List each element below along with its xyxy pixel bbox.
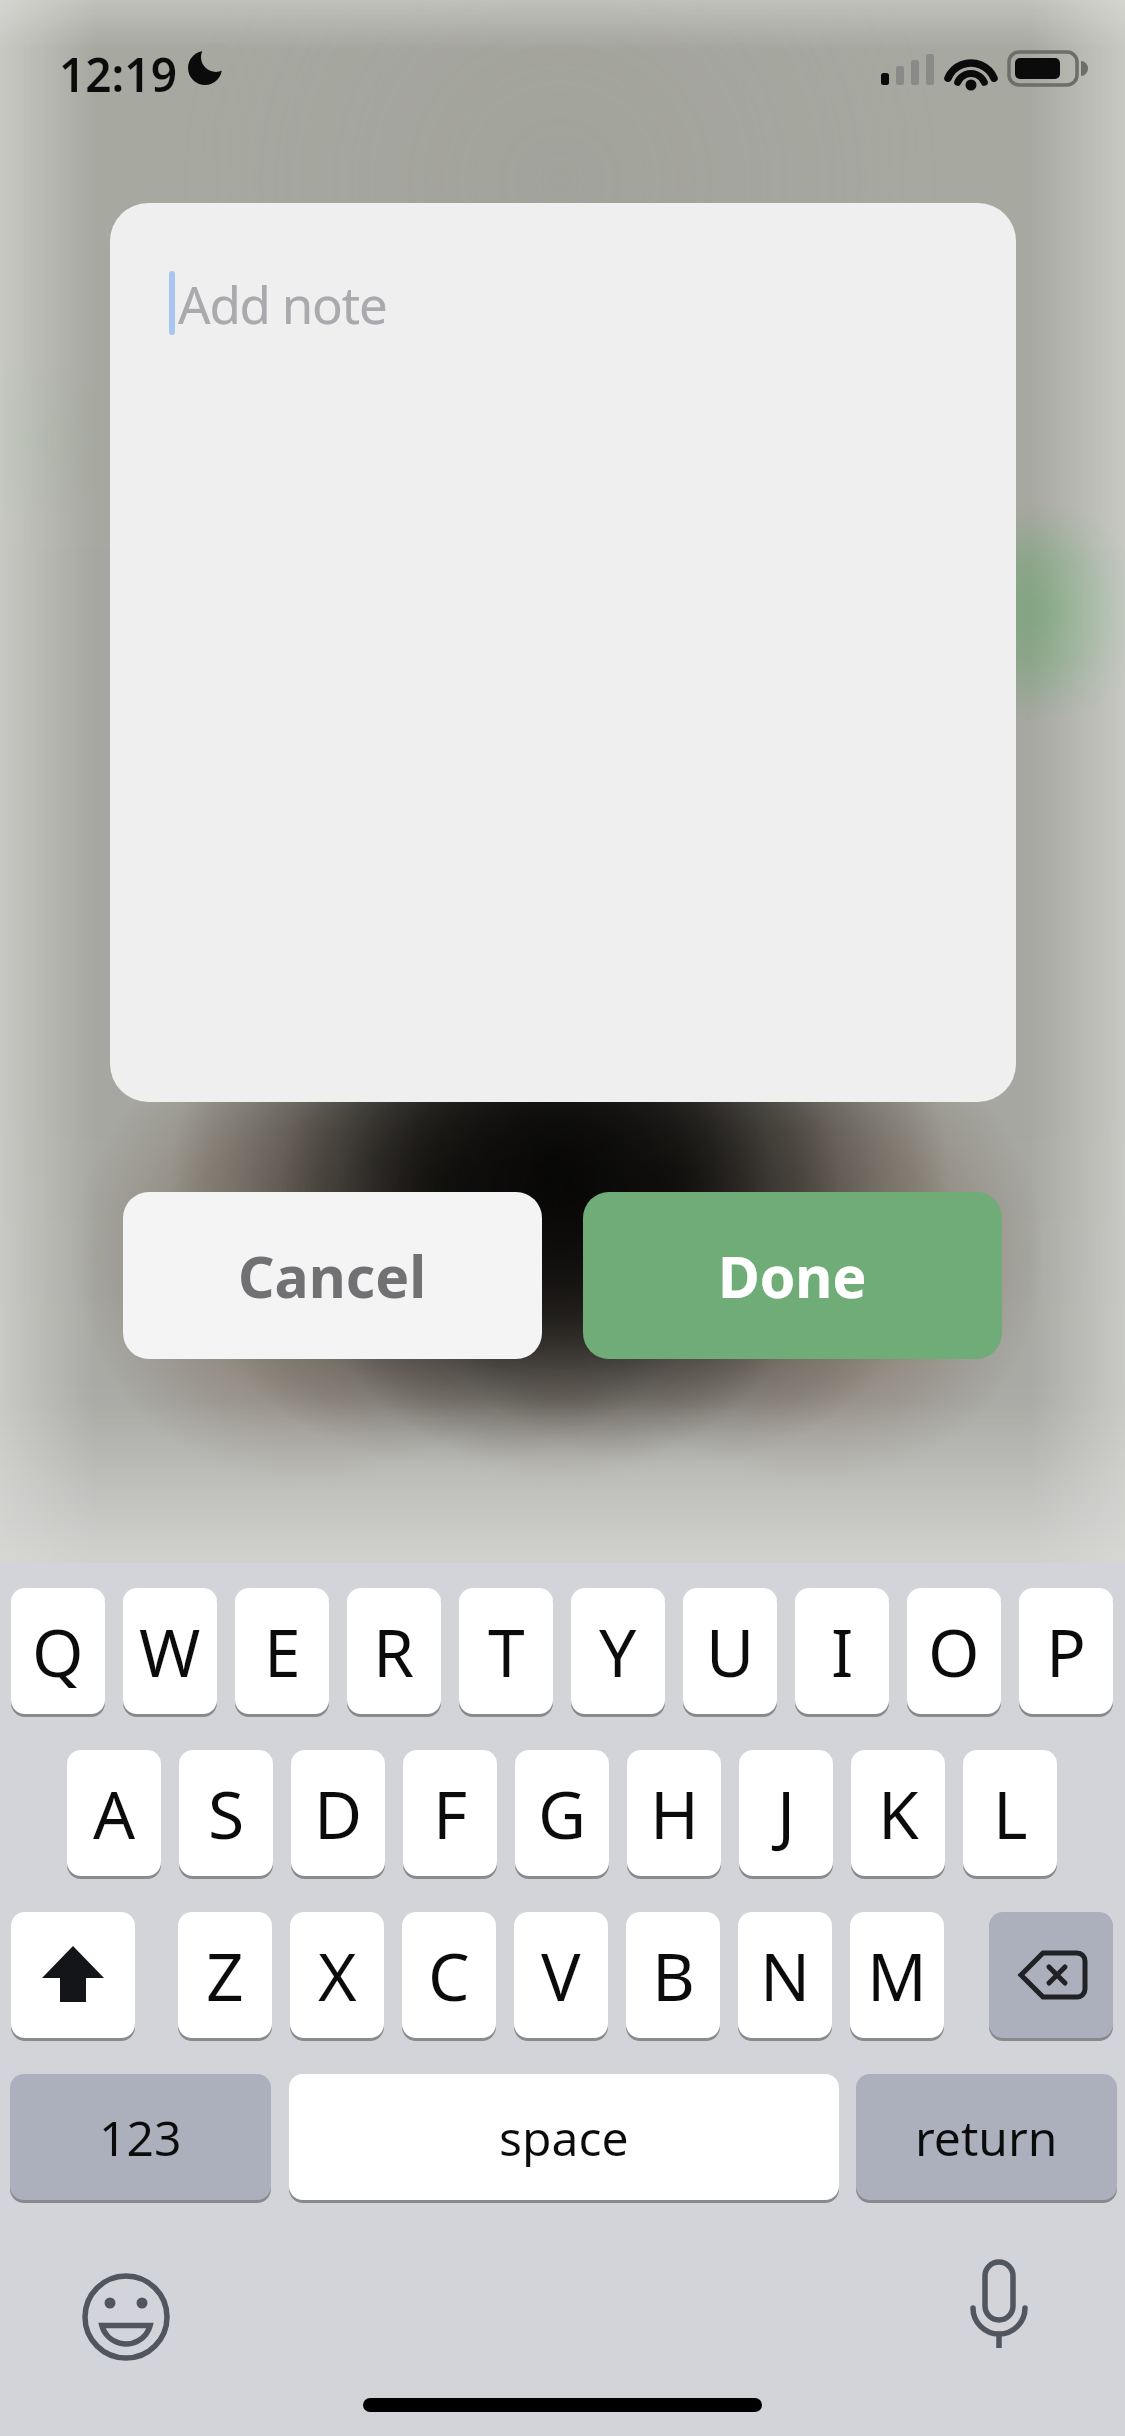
button[interactable]: O <box>907 1588 1001 1714</box>
staticText: B <box>652 1930 695 2020</box>
button[interactable]: I <box>795 1588 889 1714</box>
staticText: N <box>760 1930 811 2020</box>
staticText: M <box>867 1930 927 2020</box>
staticText: S <box>208 1768 245 1858</box>
button[interactable]: Q <box>11 1588 105 1714</box>
button[interactable]: K <box>851 1750 945 1876</box>
staticText: 12:19 <box>59 43 177 106</box>
button[interactable]: X <box>290 1912 384 2038</box>
button[interactable]: L <box>963 1750 1057 1876</box>
button[interactable]: space <box>289 2074 839 2200</box>
button[interactable]: Add note <box>110 203 1016 1102</box>
button[interactable]: Z <box>178 1912 272 2038</box>
staticText: T <box>488 1606 525 1696</box>
staticText: I <box>831 1606 854 1696</box>
button[interactable]: U <box>683 1588 777 1714</box>
staticText: 123 <box>99 2105 182 2170</box>
button[interactable]: W <box>123 1588 217 1714</box>
staticText: Done <box>718 1237 867 1315</box>
staticText: U <box>706 1606 755 1696</box>
staticText: Add note <box>178 269 387 338</box>
staticText: R <box>373 1606 415 1696</box>
staticText: Q <box>32 1606 84 1696</box>
button[interactable] <box>989 1912 1113 2038</box>
button[interactable]: return <box>856 2074 1117 2200</box>
button[interactable]: V <box>514 1912 608 2038</box>
button[interactable]: Done <box>583 1192 1002 1359</box>
staticText: L <box>993 1768 1028 1858</box>
button[interactable] <box>11 1912 135 2038</box>
staticText: return <box>915 2105 1058 2170</box>
staticText: Y <box>599 1606 637 1696</box>
staticText: X <box>318 1930 357 2020</box>
staticText: O <box>928 1606 980 1696</box>
staticText: K <box>878 1768 919 1858</box>
button[interactable]: G <box>515 1750 609 1876</box>
staticText: W <box>139 1606 201 1696</box>
button[interactable]: E <box>235 1588 329 1714</box>
staticText: H <box>650 1768 699 1858</box>
staticText: V <box>541 1930 581 2020</box>
staticText: F <box>433 1768 468 1858</box>
button[interactable]: C <box>402 1912 496 2038</box>
staticText: E <box>264 1606 301 1696</box>
button[interactable]: P <box>1019 1588 1113 1714</box>
staticText: A <box>93 1768 136 1858</box>
button[interactable]: R <box>347 1588 441 1714</box>
staticText: space <box>499 2105 629 2170</box>
button[interactable]: N <box>738 1912 832 2038</box>
staticText: C <box>428 1930 470 2020</box>
button[interactable]: M <box>850 1912 944 2038</box>
button[interactable]: H <box>627 1750 721 1876</box>
button[interactable]: F <box>403 1750 497 1876</box>
button[interactable]: Cancel <box>123 1192 542 1359</box>
button[interactable]: T <box>459 1588 553 1714</box>
button[interactable]: B <box>626 1912 720 2038</box>
button[interactable]: J <box>739 1750 833 1876</box>
staticText: G <box>538 1768 587 1858</box>
button[interactable]: S <box>179 1750 273 1876</box>
staticText: Z <box>206 1930 244 2020</box>
staticText: J <box>777 1768 796 1858</box>
button[interactable]: A <box>67 1750 161 1876</box>
button[interactable]: Y <box>571 1588 665 1714</box>
staticText: P <box>1046 1606 1086 1696</box>
button[interactable]: 123 <box>10 2074 271 2200</box>
staticText: Cancel <box>238 1237 427 1315</box>
staticText: D <box>314 1768 363 1858</box>
button[interactable]: D <box>291 1750 385 1876</box>
